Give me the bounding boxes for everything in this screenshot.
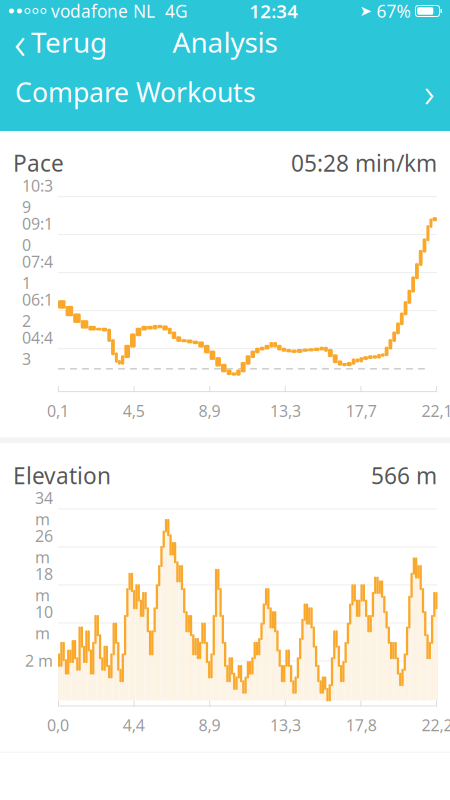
staticText: Pace — [13, 148, 64, 178]
staticText: Analysis — [172, 23, 277, 61]
staticText: Terug — [31, 23, 107, 61]
button[interactable]: Compare Workouts — [0, 62, 450, 122]
staticText: 05:28 min/km — [291, 148, 437, 178]
staticText: 17,8 — [346, 714, 377, 736]
staticText: 13,3 — [270, 714, 301, 736]
staticText: vodafone NL — [46, 0, 155, 22]
staticText: 18 m — [35, 563, 53, 606]
staticText: 13,3 — [270, 400, 301, 421]
staticText: 4G — [155, 0, 188, 22]
staticText: ‹ — [14, 12, 26, 72]
staticText: 06:12 — [22, 289, 53, 331]
staticText: 0,0 — [47, 714, 69, 736]
staticText: 10:39 — [22, 175, 53, 217]
staticText: 09:10 — [22, 213, 53, 255]
staticText: 26 m — [35, 525, 53, 568]
staticText: ➤ — [359, 3, 371, 19]
staticText: 22,2 — [421, 714, 450, 736]
staticText: Compare Workouts — [15, 74, 256, 110]
staticText: 4,5 — [123, 400, 145, 421]
staticText: 34 m — [35, 487, 53, 530]
button[interactable]: ‹ — [0, 22, 121, 62]
staticText: › — [424, 65, 435, 118]
staticText: 10 m — [35, 601, 53, 644]
staticText: 4,4 — [123, 714, 145, 736]
staticText: 8,9 — [199, 400, 221, 421]
staticText: 2 m — [25, 650, 53, 671]
staticText: 67% — [371, 0, 415, 22]
staticText: 8,9 — [199, 714, 221, 736]
staticText: 12:34 — [249, 0, 298, 23]
staticText: 22,1 — [421, 400, 450, 421]
staticText: 566 m — [371, 460, 437, 490]
staticText: 17,7 — [346, 400, 377, 421]
staticText: 04:43 — [22, 327, 53, 369]
staticText: 07:41 — [22, 251, 53, 293]
staticText: 0,1 — [47, 400, 69, 421]
staticText: Elevation — [13, 460, 111, 490]
